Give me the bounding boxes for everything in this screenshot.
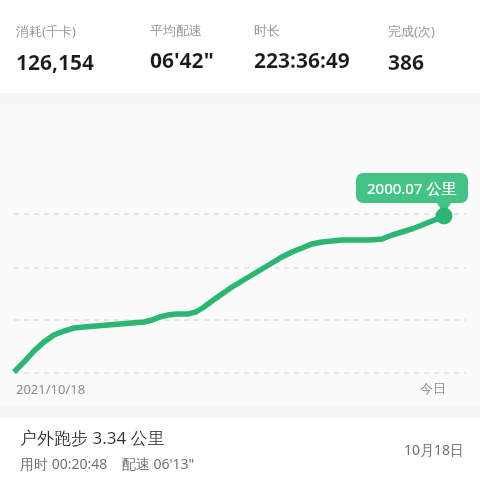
button[interactable]: 2000.07 公里 <box>356 173 468 203</box>
staticText: 10月18日 <box>403 440 464 459</box>
button[interactable]: 户外跑步 3.34 公里 <box>0 418 480 480</box>
staticText: 今日 <box>420 380 446 396</box>
staticText: 用时 00:20:48 配速 06'13" <box>20 454 195 473</box>
staticText: 223:36:49 <box>254 46 350 75</box>
staticText: 户外跑步 3.34 公里 <box>20 426 165 449</box>
staticText: 完成(次) <box>388 22 435 40</box>
staticText: 06'42" <box>150 46 214 75</box>
staticText: 时长 <box>254 22 280 38</box>
staticText: 386 <box>388 48 425 77</box>
staticText: 2000.07 公里 <box>367 178 457 198</box>
staticText: 消耗(千卡) <box>16 22 76 40</box>
button[interactable]: 2000.07 公里 <box>0 104 480 405</box>
staticText: 126,154 <box>16 48 95 77</box>
staticText: 2021/10/18 <box>16 380 86 398</box>
staticText: 平均配速 <box>150 22 202 38</box>
